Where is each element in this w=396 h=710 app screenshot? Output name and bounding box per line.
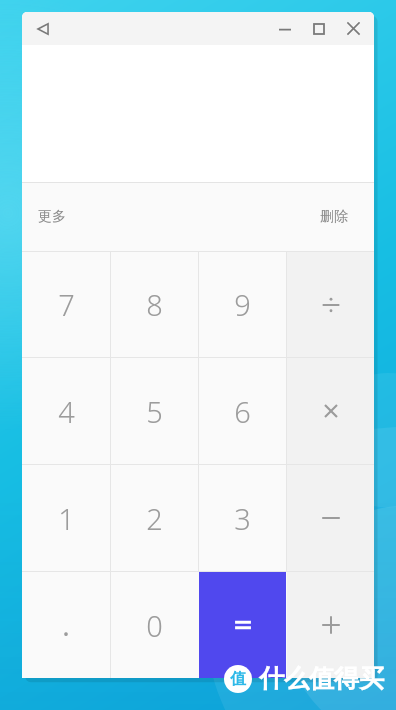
- staticText: 9: [234, 285, 251, 324]
- button[interactable]: 4: [22, 358, 110, 464]
- button[interactable]: 9: [199, 252, 286, 357]
- button[interactable]: 2: [111, 465, 198, 571]
- button[interactable]: [287, 465, 374, 571]
- button[interactable]: Close: [336, 12, 370, 45]
- button[interactable]: 7: [22, 252, 110, 357]
- staticText: 8: [146, 285, 163, 324]
- button[interactable]: 删除: [276, 183, 348, 251]
- button[interactable]: 更多: [38, 183, 110, 251]
- staticText: 2: [146, 499, 163, 538]
- staticText: 1: [58, 499, 75, 538]
- staticText: 6: [234, 392, 251, 431]
- button[interactable]: 0: [111, 572, 198, 678]
- staticText: .: [62, 606, 70, 644]
- staticText: 3: [234, 499, 251, 538]
- staticText: 什么值得买: [259, 663, 384, 694]
- button[interactable]: 1: [22, 465, 110, 571]
- button[interactable]: Maximize: [302, 12, 336, 45]
- button[interactable]: [199, 572, 286, 678]
- staticText: 0: [146, 606, 163, 645]
- staticText: 删除: [320, 208, 348, 226]
- button[interactable]: 6: [199, 358, 286, 464]
- button[interactable]: [287, 358, 374, 464]
- button[interactable]: [287, 252, 374, 357]
- staticText: 7: [58, 285, 75, 324]
- button[interactable]: [287, 572, 374, 678]
- button[interactable]: Back: [28, 14, 58, 44]
- button[interactable]: 3: [199, 465, 286, 571]
- button[interactable]: 5: [111, 358, 198, 464]
- staticText: 5: [146, 392, 163, 431]
- button[interactable]: 8: [111, 252, 198, 357]
- staticText: 值: [230, 669, 246, 689]
- staticText: 4: [58, 392, 75, 431]
- staticText: 更多: [38, 208, 66, 226]
- button[interactable]: Minimize: [268, 12, 302, 45]
